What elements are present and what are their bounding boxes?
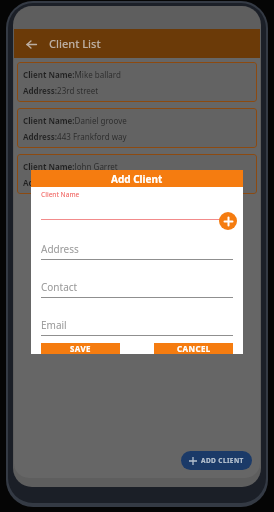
staticText: Client Name:Daniel groove <box>23 115 127 126</box>
button[interactable]: SAVE <box>41 343 120 354</box>
staticText: Address:23rd street <box>23 85 99 96</box>
staticText: CANCEL <box>177 343 211 354</box>
staticText: Contact <box>41 280 78 294</box>
button[interactable]: CANCEL <box>154 343 233 354</box>
button[interactable]: ADD CLIENT <box>181 451 252 470</box>
staticText: Client Name:John Garret <box>23 161 118 172</box>
staticText: Address:1205 Cedar ave <box>23 177 115 188</box>
staticText: Add Client <box>111 172 163 186</box>
staticText: Client Name <box>41 190 80 199</box>
button[interactable]: Client Name:John Garret <box>17 154 257 194</box>
button[interactable]: Back <box>22 35 40 53</box>
button[interactable]: Add <box>219 212 237 230</box>
button[interactable]: Client Name:Mike ballard <box>17 62 257 102</box>
staticText: SAVE <box>70 343 91 354</box>
staticText: Client List <box>49 36 101 51</box>
staticText: Email <box>41 318 67 332</box>
staticText: Client Name:Mike ballard <box>23 69 121 80</box>
button[interactable]: Client Name:Daniel groove <box>17 108 257 148</box>
staticText: Address:443 Frankford way <box>23 131 127 142</box>
staticText: Address <box>41 242 79 256</box>
staticText: ADD CLIENT <box>201 456 244 465</box>
